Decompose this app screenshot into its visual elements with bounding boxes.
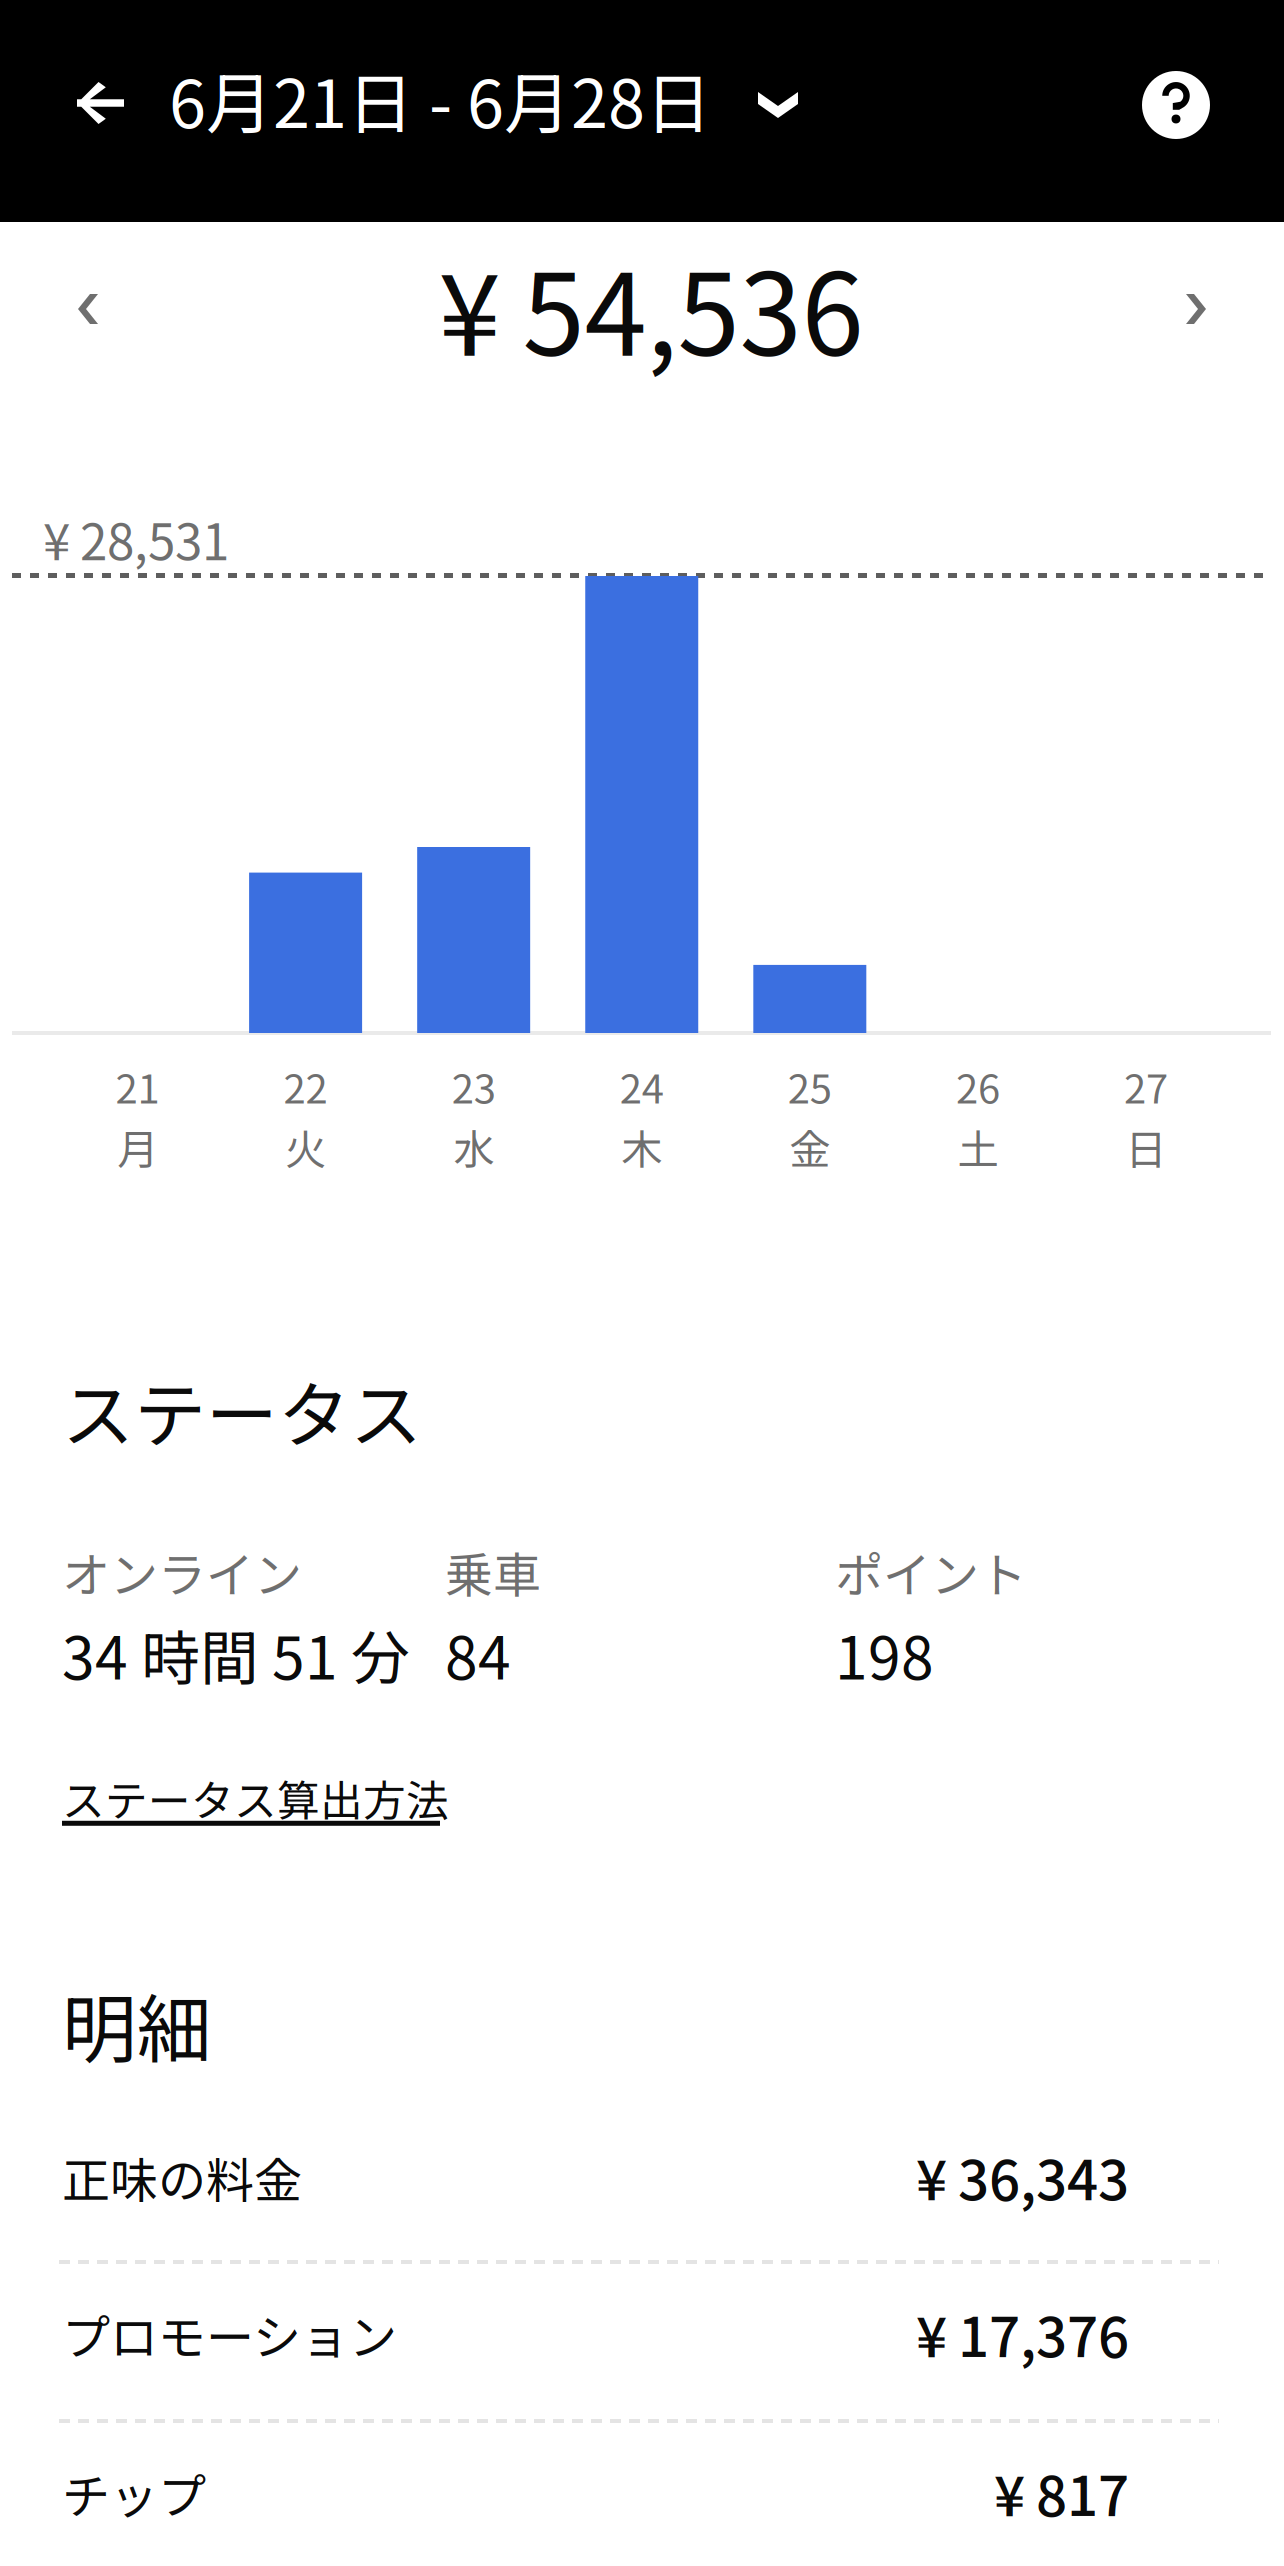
staticText: ¥ 36,343 xyxy=(916,2137,1129,2217)
staticText: ステータス算出方法 xyxy=(62,1767,449,1829)
staticText: 34 時間 51 分 xyxy=(62,1611,410,1696)
staticText: 24 xyxy=(620,1057,664,1115)
staticText: 25 xyxy=(788,1057,832,1115)
staticText: 金 xyxy=(789,1117,830,1177)
staticText: 21 xyxy=(115,1057,159,1115)
staticText: 木 xyxy=(621,1117,662,1177)
staticText: 火 xyxy=(285,1117,326,1177)
button[interactable]: Help xyxy=(1116,45,1236,165)
button[interactable]: Previous week xyxy=(29,245,147,373)
staticText: ¥ 817 xyxy=(994,2453,1129,2533)
button[interactable]: Next week xyxy=(1137,245,1255,373)
button[interactable]: チップ xyxy=(0,2412,1284,2566)
staticText: 日 xyxy=(1125,1117,1166,1177)
staticText: 22 xyxy=(284,1057,328,1115)
staticText: 乗車 xyxy=(445,1537,541,1606)
staticText: 198 xyxy=(835,1611,934,1696)
staticText: 23 xyxy=(452,1057,496,1115)
button[interactable]: プロモーション xyxy=(0,2253,1284,2415)
button[interactable]: ステータス算出方法 xyxy=(62,1751,449,1850)
staticText: 水 xyxy=(453,1117,494,1177)
staticText: 27 xyxy=(1124,1057,1168,1115)
button[interactable]: Back xyxy=(37,41,161,165)
button[interactable]: 正味の料金 xyxy=(0,2096,1284,2258)
staticText: プロモーション xyxy=(62,2299,397,2369)
staticText: ¥ 54,536 xyxy=(438,226,863,388)
staticText: 正味の料金 xyxy=(62,2142,302,2212)
staticText: 月 xyxy=(117,1117,158,1177)
staticText: 明細 xyxy=(62,1970,212,2078)
staticText: 26 xyxy=(956,1057,1000,1115)
staticText: チップ xyxy=(62,2458,206,2528)
staticText: オンライン xyxy=(62,1537,302,1606)
staticText: ¥ 28,531 xyxy=(43,503,229,574)
staticText: ステータス xyxy=(62,1358,422,1462)
button[interactable]: 6月21日 - 6月28日 xyxy=(169,29,820,169)
staticText: ¥ 17,376 xyxy=(916,2294,1129,2374)
staticText: ポイント xyxy=(835,1537,1027,1606)
staticText: 土 xyxy=(957,1117,998,1177)
staticText: 84 xyxy=(445,1611,511,1696)
staticText: 6月21日 - 6月28日 xyxy=(169,51,712,147)
